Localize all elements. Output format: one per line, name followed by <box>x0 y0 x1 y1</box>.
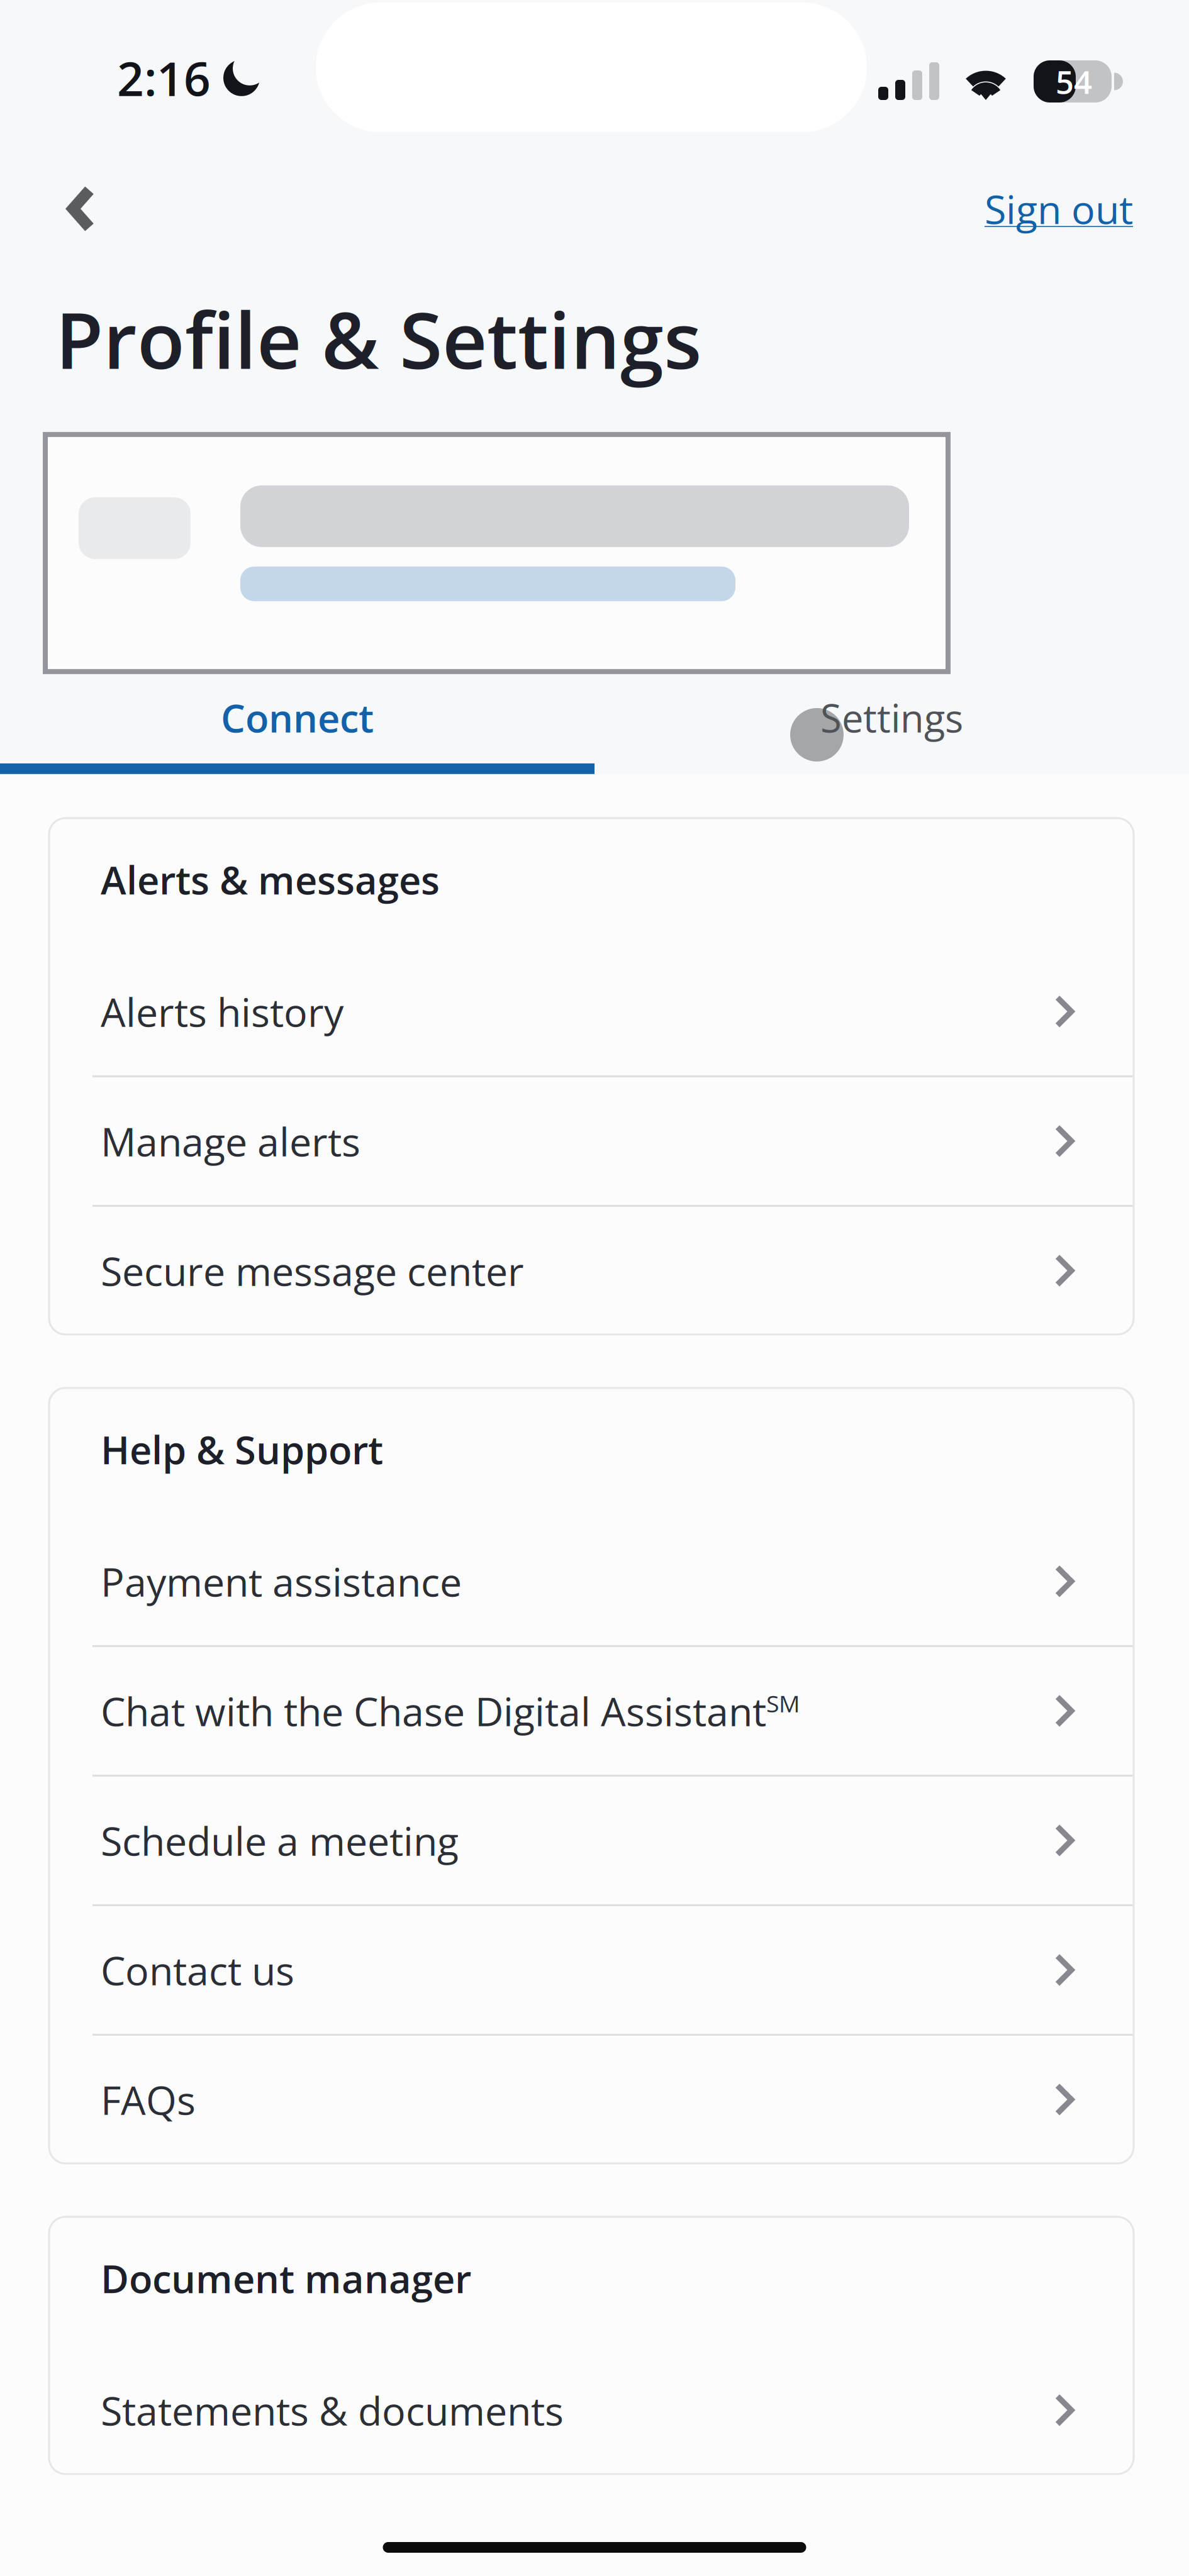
staticText: Chat with the Chase Digital AssistantSM <box>101 1685 800 1737</box>
staticText: Help & Support <box>101 1423 383 1475</box>
button[interactable]: Alerts history <box>49 946 1134 1075</box>
button[interactable]: Sign out <box>971 163 1147 254</box>
button[interactable]: Secure message center <box>49 1205 1134 1334</box>
staticText: Profile & Settings <box>55 286 701 392</box>
button[interactable]: Manage alerts <box>49 1075 1134 1205</box>
button[interactable]: Connect <box>0 672 594 763</box>
staticText: Manage alerts <box>101 1114 360 1168</box>
button[interactable]: Back <box>45 165 122 253</box>
button[interactable]: Settings <box>594 672 1189 763</box>
staticText: Settings <box>820 691 963 744</box>
button[interactable]: Schedule a meeting <box>49 1775 1134 1904</box>
button[interactable]: Chat with the Chase Digital AssistantSM <box>49 1645 1134 1775</box>
button[interactable]: FAQs <box>49 2034 1134 2163</box>
staticText: 54 <box>1056 60 1092 103</box>
button[interactable]: Payment assistance <box>49 1516 1134 1645</box>
staticText: 2:16 <box>117 46 211 110</box>
staticText: Contact us <box>101 1943 294 1997</box>
staticText: Alerts history <box>101 985 343 1038</box>
button[interactable]: Contact us <box>49 1904 1134 2034</box>
button[interactable]: Statements & documents <box>49 2344 1134 2474</box>
staticText: Statements & documents <box>101 2383 564 2437</box>
staticText: Connect <box>221 691 374 744</box>
staticText: Sign out <box>985 182 1133 236</box>
staticText: Schedule a meeting <box>101 1814 459 1867</box>
staticText: Document manager <box>101 2252 471 2304</box>
staticText: Alerts & messages <box>101 853 440 906</box>
staticText: Payment assistance <box>101 1554 462 1608</box>
staticText: FAQs <box>101 2073 196 2126</box>
staticText: Secure message center <box>101 1244 524 1297</box>
